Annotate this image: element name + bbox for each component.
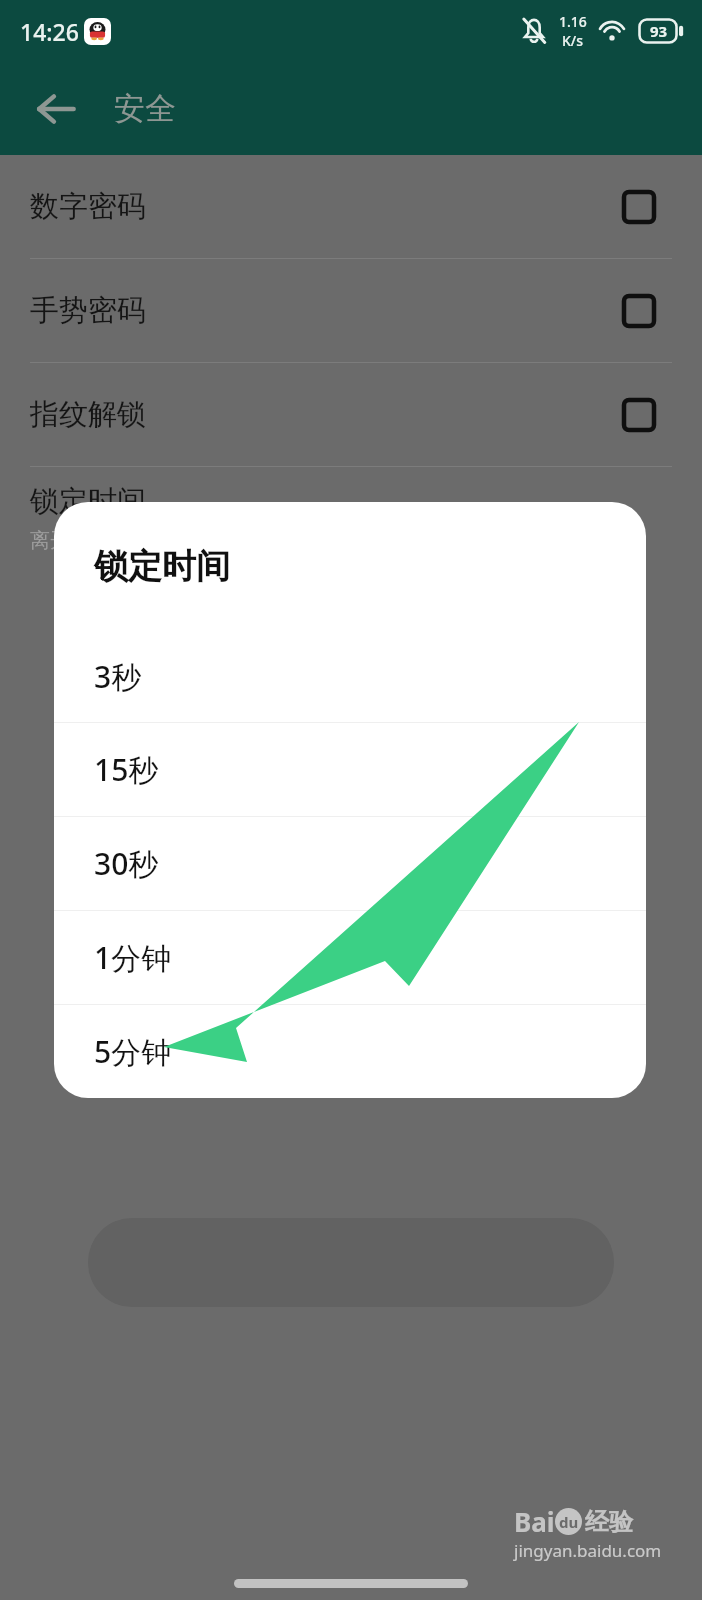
button[interactable]: 30秒 [54,817,646,910]
other: Wi-Fi [597,16,627,46]
other: Battery 93 percent [638,18,684,44]
staticText: 数字密码 [30,188,146,225]
other: Notifications off [519,16,549,46]
staticText: 1分钟 [94,937,172,978]
staticText: 1.16 [559,12,587,31]
button[interactable]: 数字密码 [0,155,702,258]
staticText: 30秒 [94,843,159,884]
staticText: 指纹解锁 [30,396,146,433]
staticText: 5分钟 [94,1031,172,1072]
staticText: 14:26 [20,16,79,47]
staticText: 锁定时间 [30,483,146,520]
staticText: 15秒 [94,749,159,790]
button[interactable]: 5分钟 [54,1005,646,1098]
button[interactable]: 3秒 [54,630,646,722]
button[interactable]: Back [28,81,84,137]
staticText: Bai [514,1504,555,1539]
button[interactable]: 指纹解锁 [0,363,702,466]
staticText: 安全 [114,89,176,128]
staticText: 手势密码 [30,292,146,329]
button[interactable]: 15秒 [54,723,646,816]
staticText: 经验 [585,1507,633,1537]
button[interactable]: 手势密码 [0,259,702,362]
staticText: 93 [650,21,668,41]
staticText: du [559,1512,579,1532]
button[interactable]: 锁定时间 [0,467,702,577]
staticText: 3秒 [94,656,142,697]
staticText: jingyan.baidu.com [514,1539,662,1562]
button[interactable]: 1分钟 [54,911,646,1004]
staticText: 离开后锁定 [30,528,130,553]
staticText: K/s [562,31,584,50]
staticText: 锁定时间 [94,545,230,588]
